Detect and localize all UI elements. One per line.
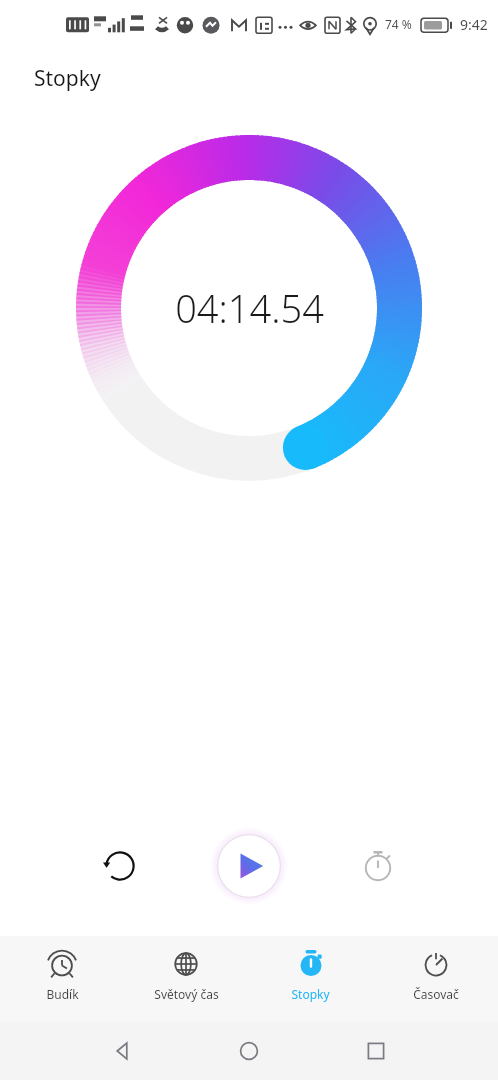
staticText: 04:14.54 bbox=[175, 282, 324, 334]
button[interactable]: Budík bbox=[0, 936, 124, 1022]
staticText: 74 % bbox=[385, 16, 412, 32]
button[interactable]: Back bbox=[98, 1027, 146, 1075]
staticText: Stopky bbox=[34, 64, 101, 93]
button[interactable]: Reset bbox=[96, 842, 144, 890]
button[interactable]: Lap bbox=[354, 842, 402, 890]
button[interactable]: Recents bbox=[352, 1027, 400, 1075]
staticText: 9:42 bbox=[460, 15, 488, 34]
button[interactable]: Stopky bbox=[248, 936, 373, 1022]
staticText: Stopky bbox=[291, 986, 330, 1002]
staticText: Světový čas bbox=[154, 986, 219, 1002]
button[interactable]: Časovač bbox=[373, 936, 498, 1022]
staticText: Časovač bbox=[413, 986, 459, 1002]
button[interactable]: Světový čas bbox=[124, 936, 248, 1022]
staticText: Budík bbox=[46, 986, 79, 1002]
button[interactable]: Start bbox=[210, 827, 288, 905]
button[interactable]: Home bbox=[225, 1027, 273, 1075]
